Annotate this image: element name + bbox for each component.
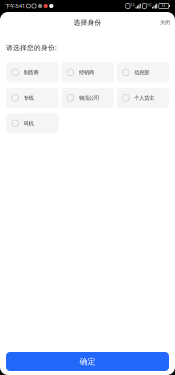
button[interactable]: 关闭 bbox=[155, 14, 175, 30]
button[interactable]: 确定 bbox=[6, 352, 169, 371]
staticText: 司机 bbox=[24, 120, 34, 127]
staticText: 个人货主 bbox=[134, 95, 154, 101]
button[interactable]: 经销商 bbox=[61, 62, 114, 82]
staticText: 选择身份 bbox=[73, 18, 101, 27]
staticText: 经销商 bbox=[79, 69, 94, 76]
staticText: 关闭 bbox=[160, 19, 170, 26]
button[interactable]: 专线 bbox=[6, 88, 58, 108]
button[interactable]: 物流公司 bbox=[61, 88, 114, 108]
staticText: 56 bbox=[162, 4, 166, 8]
staticText: 专线 bbox=[24, 95, 34, 101]
staticText: 信息部 bbox=[134, 69, 149, 76]
staticText: 5G bbox=[131, 3, 135, 7]
staticText: 制造商 bbox=[24, 69, 39, 76]
button[interactable]: 制造商 bbox=[6, 62, 58, 82]
staticText: 确定 bbox=[79, 357, 95, 366]
button[interactable]: 个人货主 bbox=[117, 88, 169, 108]
button[interactable]: 信息部 bbox=[117, 62, 169, 82]
staticText: 下午3:41 bbox=[5, 2, 25, 10]
staticText: 物流公司 bbox=[79, 95, 99, 101]
staticText: 5G bbox=[147, 3, 151, 7]
staticText: 请选择您的身份: bbox=[6, 43, 57, 52]
button[interactable]: 司机 bbox=[6, 113, 58, 133]
